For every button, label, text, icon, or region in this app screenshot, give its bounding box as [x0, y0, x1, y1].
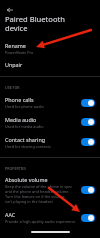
button[interactable]: Contact sharing	[0, 132, 100, 151]
staticText: Used for phone audio	[5, 104, 44, 109]
staticText: Media audio	[5, 116, 37, 123]
staticText: PROPERTIES	[5, 166, 27, 171]
button[interactable]: Contact sharing toggle	[81, 138, 95, 146]
button[interactable]: Media audio toggle	[81, 118, 95, 126]
staticText: AAC	[5, 211, 16, 218]
button[interactable]: Phone calls	[0, 92, 100, 111]
button[interactable]: Back	[4, 4, 16, 16]
staticText: Used for media audio	[5, 124, 44, 129]
staticText: Provide a high-quality audio experience	[5, 219, 76, 224]
button[interactable]: Absolute volume	[0, 172, 100, 206]
staticText: Phone calls	[5, 96, 34, 103]
button[interactable]: AAC toggle	[81, 214, 95, 222]
button[interactable]: Unpair	[0, 57, 100, 76]
staticText: Used for sharing contacts	[5, 144, 51, 149]
staticText: Keep the volume of the phone in sync and…	[5, 184, 73, 204]
button[interactable]: Media audio	[0, 112, 100, 131]
staticText: Absolute volume	[5, 176, 48, 183]
staticText: Unpair	[5, 61, 23, 68]
button[interactable]: Rename	[0, 38, 100, 57]
staticText: Paired Bluetooth device	[5, 14, 65, 34]
staticText: Rename	[5, 42, 26, 49]
button[interactable]: AAC	[0, 207, 100, 226]
button[interactable]: Absolute volume toggle	[81, 186, 95, 194]
button[interactable]: Phone calls toggle	[81, 99, 95, 107]
staticText: Contact sharing	[5, 136, 46, 143]
staticText: USE FOR	[5, 85, 20, 90]
staticText: PowerBeats Pro	[5, 50, 34, 55]
